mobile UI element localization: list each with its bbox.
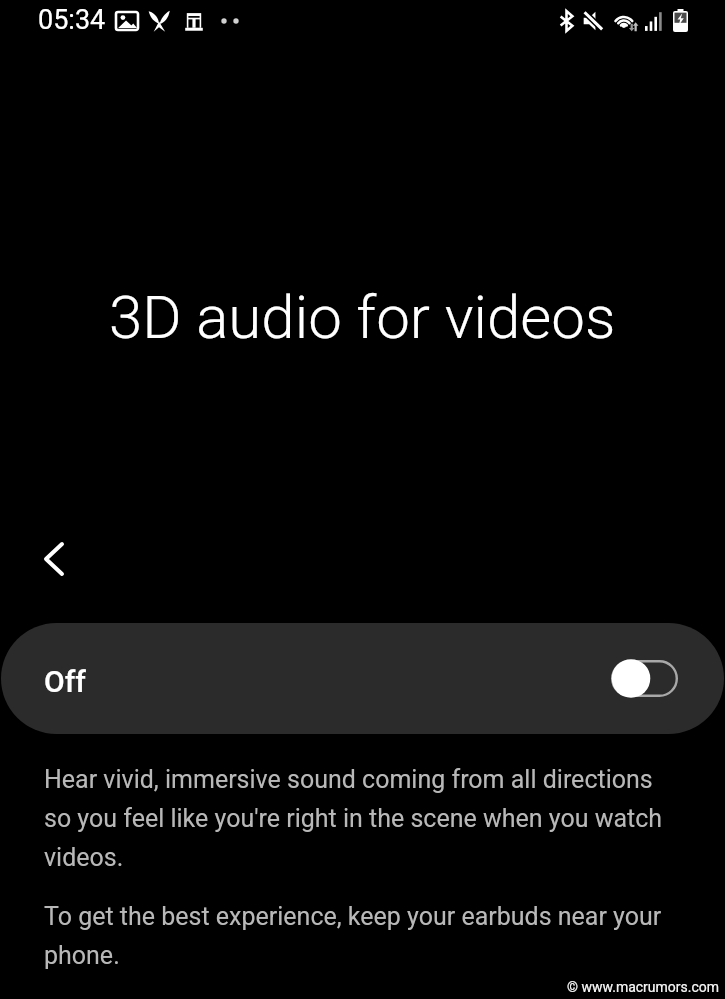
staticText: © www.macrumors.com bbox=[567, 979, 720, 995]
button[interactable]: Off bbox=[1, 623, 724, 734]
staticText: Off bbox=[44, 664, 86, 699]
button[interactable]: 3D audio for videos, off bbox=[611, 659, 678, 698]
button[interactable]: Back bbox=[26, 531, 82, 587]
staticText: 3D audio for videos bbox=[109, 282, 616, 352]
staticText: To get the best experience, keep your ea… bbox=[44, 902, 676, 970]
staticText: Hear vivid, immersive sound coming from … bbox=[44, 765, 676, 872]
staticText: 05:34 bbox=[38, 4, 106, 36]
